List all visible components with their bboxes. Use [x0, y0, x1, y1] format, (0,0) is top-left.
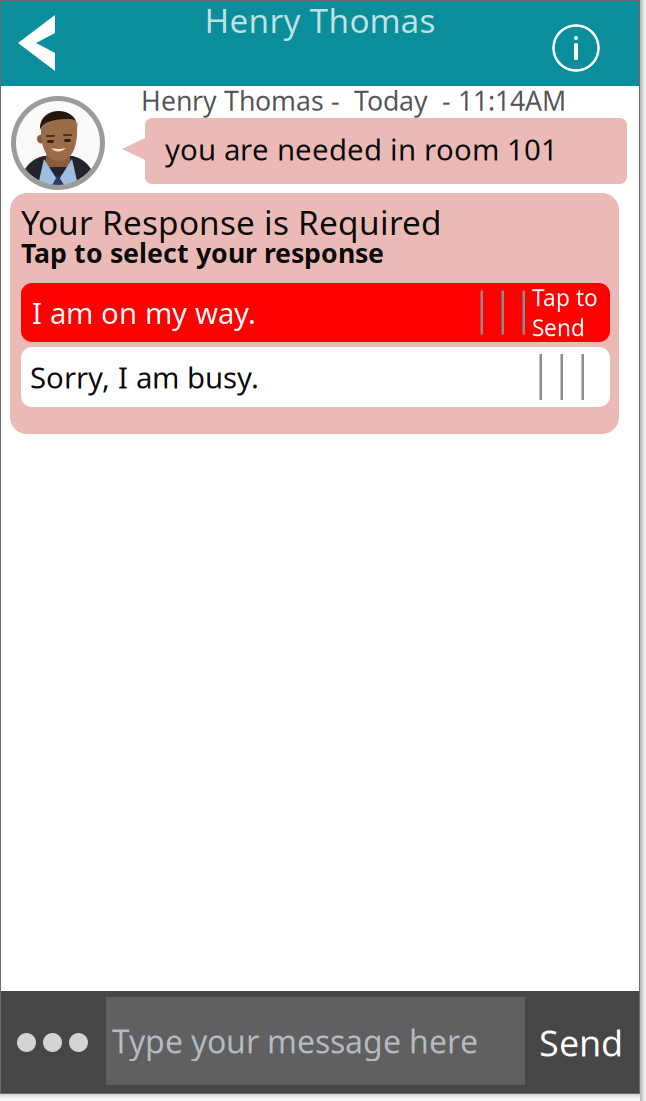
- staticText: Your Response is Required: [21, 200, 442, 244]
- staticText: Type your message here: [112, 1020, 478, 1062]
- button[interactable]: Back: [0, 0, 77, 86]
- button[interactable]: Send: [525, 991, 640, 1094]
- button[interactable]: More options: [0, 991, 106, 1094]
- staticText: you are needed in room 101: [165, 129, 558, 168]
- button[interactable]: Sorry, I am busy.: [21, 347, 610, 407]
- staticText: Sorry, I am busy.: [30, 357, 259, 396]
- staticText: I am on my way.: [32, 293, 256, 332]
- button[interactable]: Conversation info: [552, 0, 640, 86]
- staticText: Tap to select your response: [21, 235, 384, 270]
- staticText: Send: [539, 1019, 623, 1066]
- button[interactable]: Type your message here: [106, 991, 525, 1094]
- button[interactable]: I am on my way.: [21, 283, 610, 342]
- staticText: Henry Thomas - Today - 11:14AM: [141, 83, 566, 118]
- staticText: Henry Thomas: [204, 0, 435, 42]
- staticText: Tap to Send: [532, 282, 598, 343]
